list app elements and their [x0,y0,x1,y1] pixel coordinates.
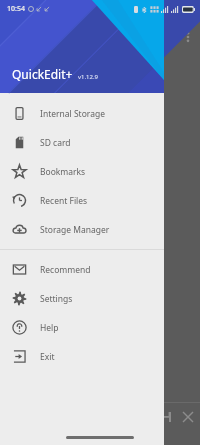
staticText: Exit [40,351,55,363]
staticText: Help [40,322,59,334]
button[interactable]: Close [178,407,198,427]
staticText: Recent Files [40,195,88,207]
button[interactable]: Recommend [0,255,164,284]
staticText: 10:54 [7,4,25,14]
staticText: SD card [40,137,71,149]
button[interactable]: Settings [0,284,164,313]
button[interactable]: Exit [0,342,164,371]
button[interactable]: Help [0,313,164,342]
button[interactable]: Storage Manager [0,215,164,244]
button[interactable]: Recent Files [0,186,164,215]
staticText: QuickEdit+ [12,66,73,82]
staticText: Settings [40,293,73,305]
button[interactable]: Edit [150,24,176,50]
button[interactable]: More options [176,25,200,49]
staticText: v1.12.9 [78,73,98,81]
staticText: Storage Manager [40,224,110,236]
button[interactable]: SD card [0,128,164,157]
button[interactable]: Bookmarks [0,157,164,186]
staticText: Bookmarks [40,166,86,178]
staticText: Internal Storage [40,108,105,120]
button[interactable]: Save [156,407,176,427]
button[interactable]: Internal Storage [0,99,164,128]
staticText: Recommend [40,264,91,276]
